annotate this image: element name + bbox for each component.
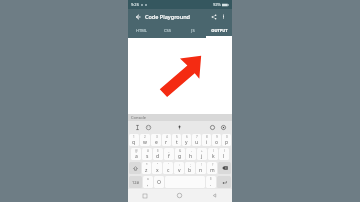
button[interactable]: #: [142, 148, 152, 160]
staticText: &: [179, 149, 182, 153]
button[interactable]: -: [186, 148, 196, 160]
staticText: j: [201, 153, 203, 160]
button[interactable]: 0: [222, 134, 231, 146]
button[interactable]: 7: [192, 134, 201, 146]
button[interactable]: 4: [162, 134, 171, 146]
staticText: f: [168, 153, 170, 160]
button[interactable]: 9: [212, 134, 221, 146]
staticText: JS: [191, 28, 195, 33]
staticText: v: [178, 167, 181, 174]
button[interactable]: More options: [219, 12, 228, 21]
button[interactable]: 3: [151, 134, 161, 146]
button[interactable]: OUTPUT: [206, 24, 232, 36]
button[interactable]: a: [143, 176, 153, 188]
staticText: r: [165, 139, 168, 146]
staticText: d: [156, 153, 160, 160]
button[interactable]: 2: [140, 134, 150, 146]
staticText: y: [185, 139, 188, 146]
button[interactable]: ): [219, 148, 229, 160]
button[interactable]: Emoji: [144, 123, 152, 131]
staticText: ;: [190, 163, 191, 167]
button[interactable]: CSS: [154, 24, 180, 36]
staticText: c: [167, 167, 170, 174]
staticText: 4: [166, 135, 168, 139]
staticText: 12#: [132, 180, 140, 185]
staticText: g: [178, 153, 182, 160]
button[interactable]: Recents: [128, 189, 162, 202]
staticText: Console: [131, 115, 147, 120]
staticText: k: [212, 153, 215, 160]
staticText: (: [213, 149, 214, 153]
button[interactable]: +: [197, 148, 207, 160]
staticText: o: [215, 139, 219, 146]
button[interactable]: 1: [129, 134, 139, 146]
button[interactable]: ": [152, 162, 162, 174]
staticText: l: [223, 153, 225, 160]
button[interactable]: Share: [208, 11, 219, 22]
button[interactable]: Home: [162, 189, 197, 202]
button[interactable]: Text editing: [133, 123, 141, 131]
staticText: 2: [144, 135, 146, 139]
button[interactable]: 8: [202, 134, 211, 146]
button[interactable]: Enter: [217, 176, 231, 188]
staticText: s: [146, 153, 149, 160]
button[interactable]: JS: [180, 24, 206, 36]
button[interactable]: *: [142, 162, 151, 174]
button[interactable]: ?: [207, 162, 217, 174]
staticText: p: [225, 139, 229, 146]
staticText: 1: [133, 135, 135, 139]
button[interactable]: :: [174, 162, 184, 174]
button[interactable]: $: [206, 176, 216, 188]
button[interactable]: _: [164, 148, 174, 160]
button[interactable]: HTML: [128, 24, 154, 36]
staticText: +: [201, 149, 203, 153]
staticText: 8: [206, 135, 208, 139]
staticText: w: [143, 139, 147, 146]
staticText: .: [210, 181, 212, 188]
staticText: ?: [212, 163, 214, 167]
staticText: ,: [147, 181, 149, 188]
button[interactable]: 6: [182, 134, 191, 146]
button[interactable]: Voice input: [175, 123, 184, 132]
button[interactable]: Emoji key: [154, 176, 164, 188]
button[interactable]: Backspace: [218, 162, 231, 174]
button[interactable]: $: [153, 148, 163, 160]
staticText: m: [210, 167, 215, 174]
staticText: ": [157, 163, 159, 167]
staticText: @: [135, 149, 138, 153]
button[interactable]: ;: [185, 162, 195, 174]
staticText: #: [147, 149, 149, 153]
button[interactable]: @: [131, 148, 141, 160]
staticText: 9:26: [131, 2, 139, 7]
staticText: $: [210, 177, 212, 181]
staticText: 7: [196, 135, 198, 139]
staticText: 3: [156, 135, 158, 139]
button[interactable]: ': [163, 162, 173, 174]
staticText: _: [168, 149, 170, 153]
button[interactable]: !: [196, 162, 206, 174]
button[interactable]: Clipboard: [208, 123, 216, 131]
staticText: a: [147, 177, 149, 181]
staticText: Code Playground: [145, 13, 191, 20]
staticText: !: [201, 163, 202, 167]
button[interactable]: 5: [172, 134, 181, 146]
button[interactable]: Back: [132, 11, 143, 22]
staticText: ': [168, 163, 169, 167]
staticText: ): [224, 149, 225, 153]
button[interactable]: Back: [197, 189, 232, 202]
staticText: 92%: [213, 2, 221, 7]
button[interactable]: Settings: [219, 123, 227, 131]
button[interactable]: &: [175, 148, 185, 160]
button[interactable]: Shift: [129, 162, 141, 174]
staticText: z: [145, 167, 148, 174]
staticText: -: [191, 149, 192, 153]
staticText: 9: [216, 135, 218, 139]
staticText: 6: [186, 135, 188, 139]
staticText: $: [157, 149, 159, 153]
button[interactable]: 12#: [129, 176, 142, 188]
button[interactable]: (: [208, 148, 218, 160]
staticText: x: [156, 167, 159, 174]
staticText: HTML: [136, 28, 147, 33]
staticText: n: [199, 167, 203, 174]
